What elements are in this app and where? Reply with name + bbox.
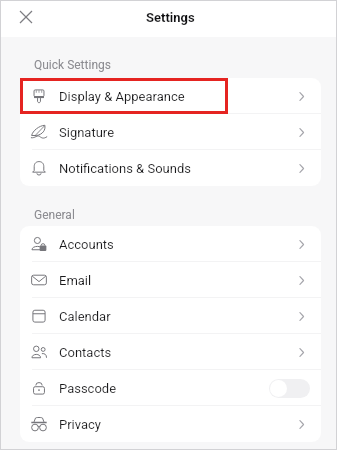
staticText: Accounts [59, 237, 114, 252]
button[interactable]: Close [13, 4, 39, 30]
staticText: General [34, 208, 75, 222]
button[interactable]: Passcode [20, 370, 321, 406]
staticText: Notifications & Sounds [59, 161, 191, 176]
staticText: Contacts [59, 345, 112, 360]
button[interactable]: Display & Appearance [20, 78, 321, 114]
button[interactable]: Notifications & Sounds [20, 150, 321, 186]
button[interactable]: Accounts [20, 226, 321, 262]
staticText: Display & Appearance [59, 89, 185, 104]
staticText: Quick Settings [34, 58, 111, 72]
button[interactable]: Contacts [20, 334, 321, 370]
staticText: Passcode [59, 381, 117, 396]
staticText: Calendar [59, 309, 111, 324]
staticText: Signature [59, 125, 115, 140]
button[interactable]: Signature [20, 114, 321, 150]
staticText: Privacy [59, 417, 101, 432]
staticText: Email [59, 273, 92, 288]
button[interactable]: Privacy [20, 406, 321, 442]
button[interactable]: Calendar [20, 298, 321, 334]
staticText: Settings [146, 10, 195, 25]
button[interactable]: Email [20, 262, 321, 298]
